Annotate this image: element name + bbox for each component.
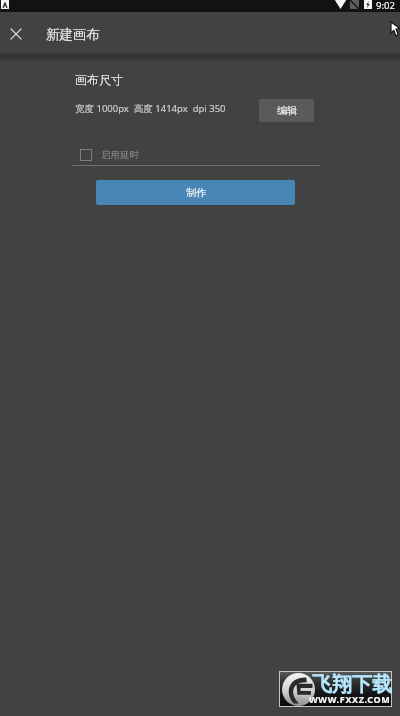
staticText: WWW.FXXZ.COM	[309, 693, 391, 705]
staticText: 9:02	[376, 0, 395, 11]
button[interactable]: 制作	[96, 180, 295, 205]
staticText: 编辑	[277, 104, 297, 117]
staticText: 启用延时	[101, 149, 139, 161]
staticText: 新建画布	[46, 26, 100, 43]
staticText: 飞翔下载	[312, 672, 392, 697]
staticText: 制作	[186, 186, 206, 199]
button[interactable]: 编辑	[259, 99, 314, 122]
staticText: 宽度 1000px 高度 1414px dpi 350	[75, 102, 226, 115]
button[interactable]: 启用延时	[72, 149, 149, 161]
button[interactable]: Close	[0, 18, 32, 50]
staticText: 画布尺寸	[75, 72, 123, 87]
